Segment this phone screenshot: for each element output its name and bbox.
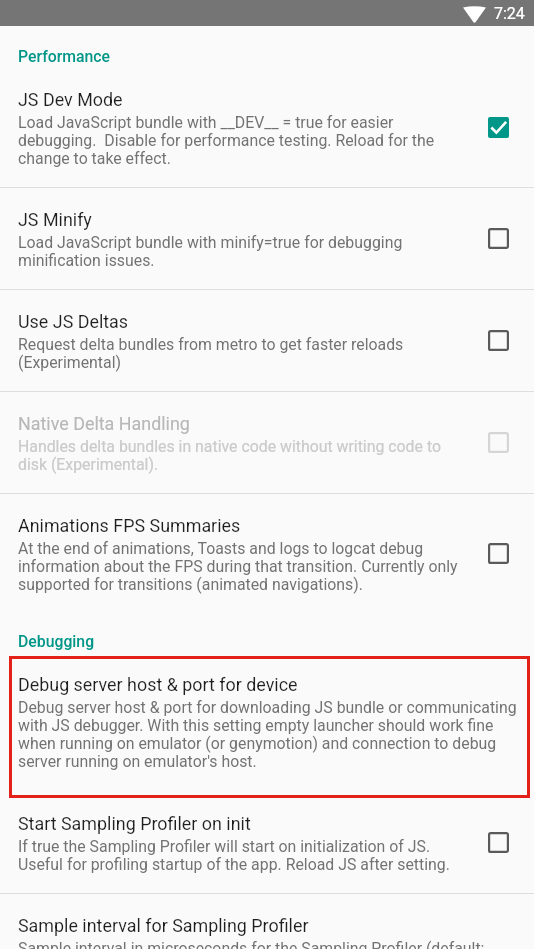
staticText: If true the Sampling Profiler will start… [18, 837, 468, 874]
staticText: Request delta bundles from metro to get … [18, 335, 468, 372]
staticText: Load JavaScript bundle with __DEV__ = tr… [18, 113, 468, 168]
staticText: JS Minify [18, 209, 92, 230]
button[interactable]: JS Dev Mode [0, 68, 534, 187]
staticText: Debugging [18, 632, 95, 651]
staticText: At the end of animations, Toasts and log… [18, 539, 468, 594]
staticText: 7:24 [494, 4, 525, 23]
button[interactable]: Debug server host & port for device [0, 656, 534, 793]
button[interactable]: Unchecked checkbox [475, 531, 521, 577]
button[interactable]: Unchecked checkbox [475, 420, 521, 466]
button[interactable]: Unchecked checkbox [475, 216, 521, 262]
button[interactable]: Checked checkbox [475, 105, 521, 151]
button[interactable]: Use JS Deltas [0, 290, 534, 391]
button[interactable]: Unchecked checkbox [475, 820, 521, 866]
button[interactable]: Sample interval for Sampling Profiler [0, 894, 534, 949]
button[interactable]: Native Delta Handling [0, 392, 534, 493]
staticText: Performance [18, 47, 111, 66]
staticText: Sample interval in microseconds for the … [18, 939, 493, 949]
staticText: Native Delta Handling [18, 413, 190, 434]
button[interactable]: JS Minify [0, 188, 534, 289]
button[interactable]: Unchecked checkbox [475, 318, 521, 364]
button[interactable]: Animations FPS Summaries [0, 494, 534, 613]
staticText: Debug server host & port for device [18, 674, 298, 695]
staticText: Handles delta bundles in native code wit… [18, 437, 468, 474]
other: Wi-Fi [463, 6, 486, 22]
staticText: Use JS Deltas [18, 311, 129, 332]
staticText: Start Sampling Profiler on init [18, 813, 251, 834]
button[interactable]: Start Sampling Profiler on init [0, 793, 534, 893]
staticText: JS Dev Mode [18, 89, 123, 110]
staticText: Sample interval for Sampling Profiler [18, 915, 309, 936]
staticText: Animations FPS Summaries [18, 515, 241, 536]
staticText: Load JavaScript bundle with minify=true … [18, 233, 468, 270]
staticText: Debug server host & port for downloading… [18, 698, 530, 771]
